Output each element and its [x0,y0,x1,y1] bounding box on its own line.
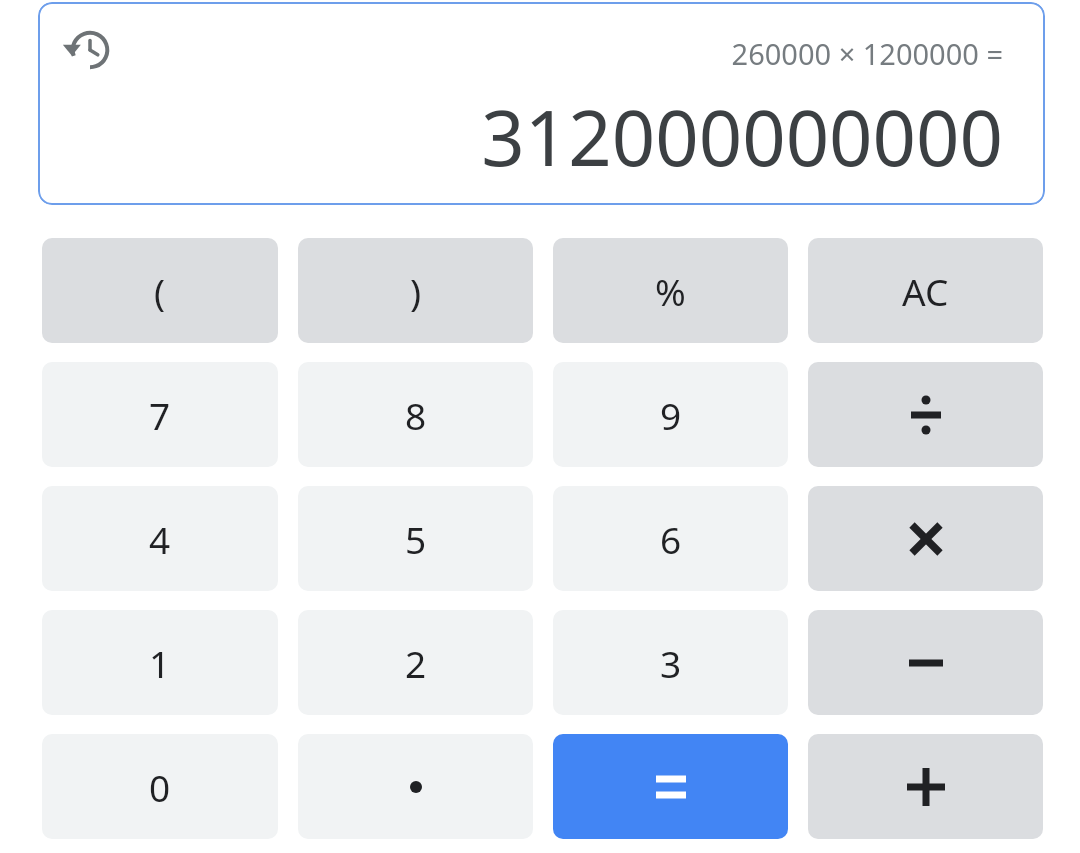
button[interactable]: % [553,238,788,343]
staticText: 6 [660,514,682,564]
button[interactable]: 9 [553,362,788,467]
button[interactable]: ( [42,238,278,343]
button[interactable]: 7 [42,362,278,467]
button[interactable]: . [298,734,533,839]
staticText: % [655,266,686,316]
button[interactable]: AC [808,238,1043,343]
staticText: 4 [149,514,171,564]
button[interactable]: 1 [42,610,278,715]
staticText: 7 [149,390,171,440]
button[interactable]: = [553,734,788,839]
staticText: 260000 × 1200000 = [731,34,1003,73]
button[interactable]: 0 [42,734,278,839]
button[interactable]: 6 [553,486,788,591]
button[interactable]: 3 [553,610,788,715]
staticText: 312000000000 [481,85,1003,189]
staticText: 0 [149,762,171,812]
button[interactable]: + [808,734,1043,839]
button[interactable]: × [808,486,1043,591]
button[interactable]: ÷ [808,362,1043,467]
button[interactable]: ) [298,238,533,343]
button[interactable]: 4 [42,486,278,591]
staticText: 9 [660,390,682,440]
staticText: ( [154,266,166,316]
button[interactable]: − [808,610,1043,715]
button[interactable]: 2 [298,610,533,715]
staticText: 1 [149,638,171,688]
button[interactable]: 5 [298,486,533,591]
button[interactable]: History [62,24,114,76]
button[interactable]: 8 [298,362,533,467]
staticText: 8 [405,390,427,440]
staticText: AC [902,266,949,316]
staticText: 3 [660,638,682,688]
staticText: 5 [405,514,427,564]
staticText: ) [410,266,422,316]
staticText: 2 [405,638,427,688]
